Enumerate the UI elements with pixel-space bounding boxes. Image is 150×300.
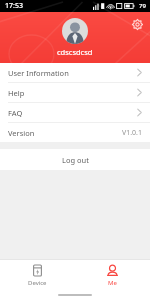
staticText: Help bbox=[8, 88, 25, 98]
button[interactable]: Help bbox=[0, 83, 150, 102]
button[interactable]: Log out bbox=[0, 149, 150, 170]
staticText: 17:53 bbox=[5, 1, 23, 11]
button[interactable]: Version bbox=[0, 123, 150, 142]
staticText: Device bbox=[28, 279, 47, 287]
staticText: FAQ bbox=[8, 108, 23, 118]
button[interactable]: User Information bbox=[0, 63, 150, 82]
staticText: cdscsdcsd bbox=[57, 47, 93, 57]
staticText: V1.0.1 bbox=[122, 128, 142, 138]
staticText: 79 bbox=[139, 2, 146, 10]
staticText: Version bbox=[8, 128, 35, 138]
button[interactable]: Device bbox=[0, 260, 75, 290]
staticText: Log out bbox=[62, 155, 89, 165]
button[interactable]: Profile photo bbox=[62, 18, 88, 44]
button[interactable]: Me bbox=[75, 260, 150, 290]
staticText: User Information bbox=[8, 68, 69, 78]
button[interactable]: FAQ bbox=[0, 103, 150, 122]
staticText: Me bbox=[108, 279, 117, 287]
button[interactable]: Settings bbox=[128, 15, 146, 33]
